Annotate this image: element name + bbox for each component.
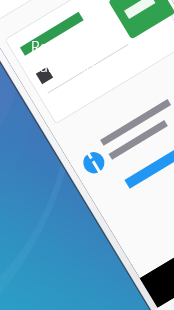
button[interactable]: Realtime Calculation app preview (0, 0, 174, 310)
staticText: Realtime (31, 36, 89, 56)
staticText: Calculation (31, 56, 104, 76)
